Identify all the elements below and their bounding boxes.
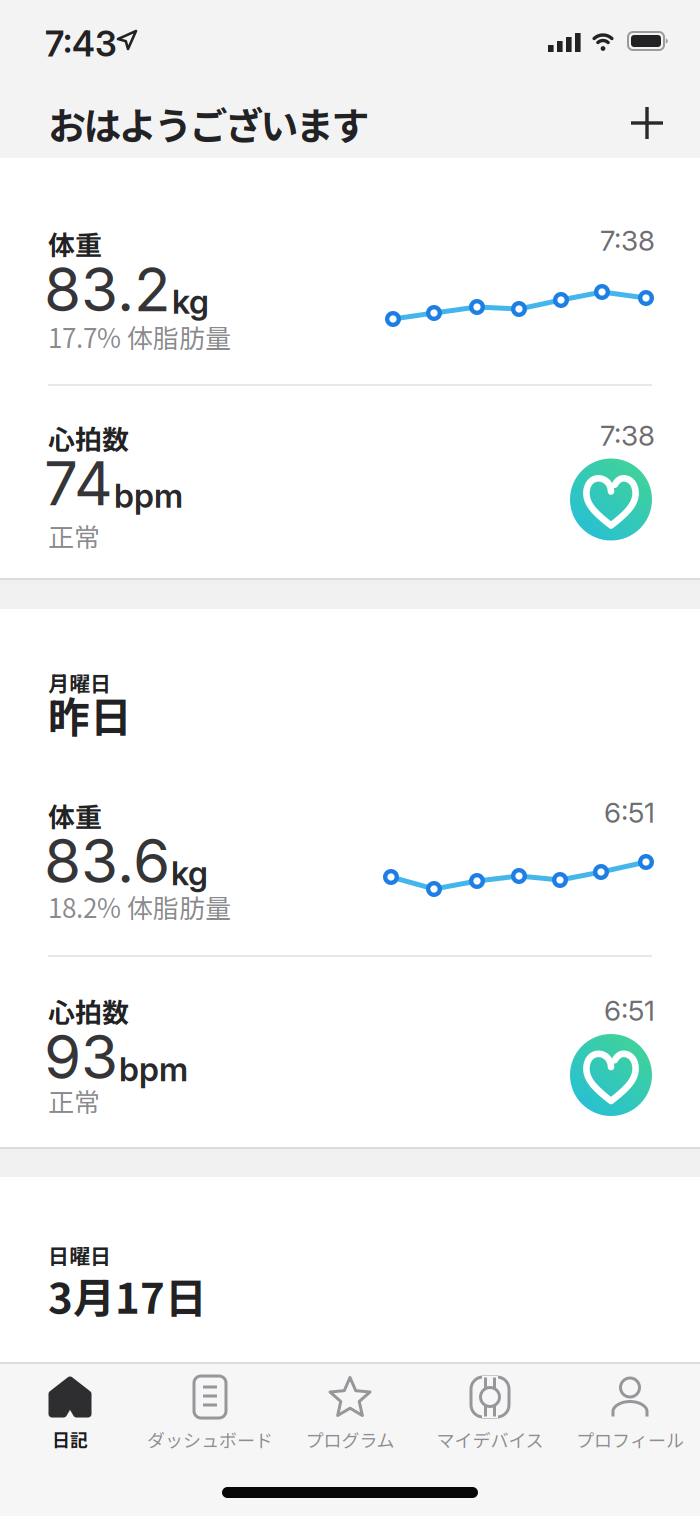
staticText: 7:38 <box>600 223 655 257</box>
button[interactable]: ダッシュボード <box>140 1375 280 1449</box>
button[interactable]: 心拍数 93bpm 正常 6:51 <box>0 981 700 1139</box>
staticText: 6:51 <box>604 795 655 829</box>
staticText: 7:43 <box>45 22 117 65</box>
button[interactable]: プログラム <box>280 1375 420 1449</box>
staticText: 正常 <box>48 522 100 549</box>
button[interactable]: 日記 <box>0 1375 140 1449</box>
button[interactable]: 体重 83.2kg 17.7% 体脂肪量 7:38 <box>0 216 700 384</box>
staticText: 昨日 <box>48 692 132 736</box>
staticText: ダッシュボード <box>147 1430 273 1449</box>
staticText: 体重 <box>48 229 102 258</box>
staticText: おはようございます <box>48 103 369 143</box>
staticText: kg <box>171 853 208 893</box>
staticText: 心拍数 <box>48 997 129 1025</box>
staticText: 正常 <box>48 1087 100 1114</box>
staticText: 7:38 <box>600 418 655 452</box>
staticText: 74 <box>44 447 113 520</box>
staticText: 日曜日 <box>48 1244 111 1266</box>
staticText: マイデバイス <box>436 1430 543 1449</box>
staticText: プログラム <box>305 1430 394 1449</box>
staticText: 月曜日 <box>48 671 111 693</box>
button[interactable]: 心拍数 74bpm 正常 7:38 <box>0 408 700 568</box>
staticText: 18.2% 体脂肪量 <box>48 893 231 920</box>
staticText: プロフィール <box>576 1430 684 1449</box>
button[interactable]: 体重 83.6kg 18.2% 体脂肪量 6:51 <box>0 789 700 955</box>
staticText: bpm <box>119 1049 188 1089</box>
staticText: bpm <box>114 476 183 516</box>
button[interactable]: 追加 <box>631 107 663 139</box>
staticText: kg <box>172 282 209 322</box>
staticText: 6:51 <box>604 993 655 1027</box>
staticText: 体重 <box>48 801 102 830</box>
button[interactable]: プロフィール <box>560 1375 700 1449</box>
staticText: 心拍数 <box>48 424 129 452</box>
button[interactable]: マイデバイス <box>420 1375 560 1449</box>
staticText: 17.7% 体脂肪量 <box>48 323 231 350</box>
staticText: 日記 <box>52 1430 88 1449</box>
staticText: 93 <box>44 1020 118 1093</box>
staticText: 83.2 <box>44 253 171 326</box>
staticText: 83.6 <box>44 824 170 897</box>
staticText: 3月17日 <box>48 1273 207 1317</box>
